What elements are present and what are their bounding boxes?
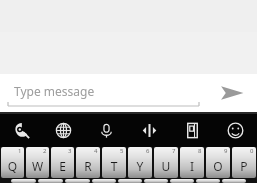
button[interactable]: 0 xyxy=(232,147,256,178)
button[interactable]: 5 xyxy=(102,147,126,178)
button[interactable]: D xyxy=(65,179,90,183)
staticText: 9 xyxy=(224,147,228,155)
staticText: T xyxy=(102,158,126,174)
staticText: U xyxy=(154,158,178,174)
button[interactable]: Move cursor xyxy=(128,114,171,147)
button[interactable]: Change language xyxy=(42,114,85,147)
staticText: 2 xyxy=(43,147,47,155)
button[interactable]: 7 xyxy=(154,147,178,178)
staticText: 6 xyxy=(146,147,150,155)
button[interactable]: G xyxy=(118,179,142,183)
button[interactable]: F xyxy=(92,179,116,183)
staticText: I xyxy=(180,158,204,174)
button[interactable]: S xyxy=(38,179,63,183)
button[interactable]: 3 xyxy=(51,147,74,178)
staticText: P xyxy=(232,158,256,174)
staticText: Q xyxy=(1,158,24,174)
button[interactable]: Voice input xyxy=(85,114,128,147)
staticText: O xyxy=(206,158,230,174)
staticText: R xyxy=(76,158,100,174)
staticText: 7 xyxy=(172,147,176,155)
button[interactable]: 4 xyxy=(76,147,100,178)
staticText: Y xyxy=(128,158,152,174)
button[interactable]: J xyxy=(170,179,194,183)
staticText: Type message xyxy=(14,83,95,99)
button[interactable]: 1 xyxy=(1,147,24,178)
button[interactable]: Gesture typing xyxy=(0,114,42,147)
staticText: 1 xyxy=(18,147,22,155)
staticText: 3 xyxy=(68,147,72,155)
button[interactable]: L xyxy=(222,179,246,183)
button[interactable]: Emoji xyxy=(214,114,257,147)
button[interactable]: Clipboard xyxy=(171,114,214,147)
staticText: W xyxy=(26,158,49,174)
button[interactable]: K xyxy=(196,179,220,183)
button[interactable]: Type message xyxy=(0,74,207,112)
button[interactable]: Send xyxy=(207,74,257,112)
staticText: E xyxy=(51,158,74,174)
button[interactable]: H xyxy=(144,179,168,183)
button[interactable]: 9 xyxy=(206,147,230,178)
button[interactable]: 8 xyxy=(180,147,204,178)
button[interactable]: A xyxy=(11,179,36,183)
staticText: 4 xyxy=(94,147,98,155)
staticText: 5 xyxy=(120,147,124,155)
button[interactable]: 6 xyxy=(128,147,152,178)
staticText: 8 xyxy=(198,147,202,155)
staticText: 0 xyxy=(250,147,254,155)
button[interactable]: 2 xyxy=(26,147,49,178)
